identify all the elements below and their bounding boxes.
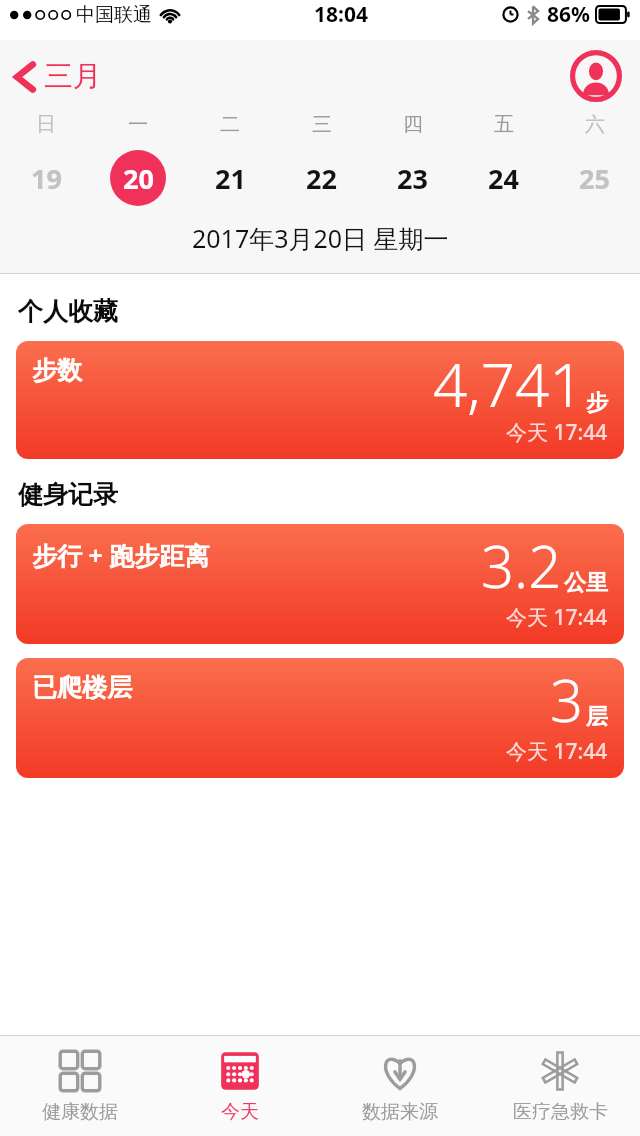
button[interactable]: 步行 + 跑步距离: [16, 524, 624, 644]
staticText: 20: [123, 160, 154, 197]
staticText: 86%: [547, 0, 590, 29]
staticText: 已爬楼层: [32, 672, 132, 703]
staticText: 三月: [44, 58, 102, 95]
staticText: 医疗急救卡: [513, 1100, 608, 1124]
staticText: 25: [579, 160, 610, 197]
button[interactable]: 25: [549, 149, 640, 207]
button[interactable]: 个人资料: [570, 50, 622, 102]
staticText: 健康数据: [42, 1100, 118, 1124]
button[interactable]: 24: [458, 149, 549, 207]
staticText: 四: [403, 112, 423, 137]
staticText: 一: [128, 112, 148, 137]
staticText: 4,741: [433, 343, 584, 425]
staticText: 24: [488, 160, 519, 197]
staticText: 步行 + 跑步距离: [32, 538, 210, 572]
staticText: 六: [585, 112, 605, 137]
staticText: 个人收藏: [18, 296, 118, 327]
staticText: 日: [36, 112, 56, 137]
staticText: 公里: [564, 569, 608, 597]
staticText: 今天 17:44: [506, 737, 608, 766]
staticText: 步: [586, 389, 608, 417]
button[interactable]: 三月: [0, 52, 116, 101]
staticText: 3.2: [481, 526, 562, 605]
button[interactable]: 今天: [160, 1036, 320, 1136]
staticText: 中国联通: [76, 3, 152, 27]
staticText: 三: [312, 112, 332, 137]
button[interactable]: 21: [184, 149, 276, 207]
staticText: 健身记录: [18, 479, 118, 510]
staticText: 22: [306, 160, 337, 197]
staticText: 今天 17:44: [506, 603, 608, 632]
staticText: 五: [494, 112, 514, 137]
staticText: 二: [220, 112, 240, 137]
button[interactable]: 数据来源: [320, 1036, 480, 1136]
button[interactable]: 已爬楼层: [16, 658, 624, 778]
button[interactable]: 健康数据: [0, 1036, 160, 1136]
staticText: 23: [397, 160, 428, 197]
button[interactable]: 22: [276, 149, 367, 207]
staticText: 18:04: [314, 0, 368, 29]
button[interactable]: 20: [92, 149, 184, 207]
staticText: 2017年3月20日 星期一: [192, 221, 449, 255]
staticText: 数据来源: [362, 1100, 438, 1124]
staticText: 19: [31, 160, 62, 197]
button[interactable]: 23: [367, 149, 458, 207]
staticText: 21: [215, 160, 246, 197]
button[interactable]: 19: [0, 149, 92, 207]
staticText: 今天 17:44: [506, 418, 608, 447]
staticText: 3: [550, 660, 584, 739]
staticText: 层: [586, 703, 608, 731]
staticText: 今天: [221, 1100, 259, 1124]
staticText: 步数: [32, 355, 82, 386]
button[interactable]: 医疗急救卡: [480, 1036, 640, 1136]
button[interactable]: 步数: [16, 341, 624, 459]
